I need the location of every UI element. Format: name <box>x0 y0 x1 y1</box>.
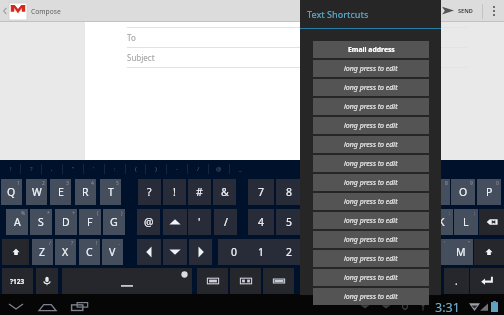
button[interactable]: R <box>75 179 96 205</box>
button[interactable]: Q <box>1 179 22 205</box>
button[interactable]: 1 <box>245 239 277 265</box>
button[interactable]: ! <box>1 160 21 178</box>
button[interactable]: 5 <box>276 209 302 235</box>
button[interactable]: long press to edit <box>313 98 429 115</box>
button[interactable]: long press to edit <box>313 174 429 191</box>
staticText: Z <box>39 245 46 259</box>
button[interactable]: Down <box>163 239 187 265</box>
button[interactable]: 0 <box>218 239 250 265</box>
button[interactable]: Y <box>375 179 399 205</box>
button[interactable]: 8 <box>276 179 302 205</box>
button[interactable]: Right <box>189 239 212 265</box>
button[interactable]: long press to edit <box>313 288 429 305</box>
button[interactable]: G <box>103 209 125 235</box>
button[interactable]: O <box>451 179 475 205</box>
button[interactable]: long press to edit <box>313 136 429 153</box>
button[interactable]: Keyboard layout <box>197 268 228 294</box>
button[interactable]: Voice input <box>36 268 58 294</box>
staticText: ) <box>155 165 157 173</box>
button[interactable]: Split keyboard <box>230 268 261 294</box>
button[interactable]: / <box>214 209 237 235</box>
button[interactable]: @ <box>137 209 160 235</box>
button[interactable]: & <box>213 179 236 205</box>
button[interactable]: 7 <box>248 179 274 205</box>
button[interactable]: long press to edit <box>313 60 429 77</box>
button[interactable]: long press to edit <box>313 79 429 96</box>
staticText: M <box>456 245 466 259</box>
button[interactable]: SEND <box>434 0 482 22</box>
button[interactable]: Shift <box>2 239 29 265</box>
button[interactable]: # <box>188 179 211 205</box>
button[interactable]: ? <box>21 160 41 178</box>
button[interactable]: Home <box>35 298 59 315</box>
button[interactable]: B <box>399 239 424 265</box>
staticText: SEND <box>458 7 473 15</box>
button[interactable]: Hide keyboard <box>4 298 28 315</box>
button[interactable]: ! <box>163 179 186 205</box>
button[interactable]: " <box>63 160 83 178</box>
button[interactable]: ' <box>188 209 211 235</box>
button[interactable]: ?123 <box>2 268 33 294</box>
button[interactable]: A <box>6 209 28 235</box>
button[interactable]: long press to edit <box>313 231 429 248</box>
button[interactable]: Navigate up <box>0 0 65 22</box>
button[interactable]: V <box>102 239 123 265</box>
staticText: & <box>221 185 229 199</box>
button[interactable]: Enter <box>470 268 504 294</box>
button[interactable]: W <box>26 179 47 205</box>
button[interactable]: X <box>55 239 76 265</box>
button[interactable]: D <box>55 209 77 235</box>
button[interactable]: Z <box>32 239 53 265</box>
button[interactable]: 9 <box>304 179 330 205</box>
button[interactable]: Space <box>62 268 192 294</box>
button[interactable]: H <box>379 209 403 235</box>
button[interactable]: long press to edit <box>313 269 429 286</box>
button[interactable]: M <box>448 239 473 265</box>
staticText: X <box>62 245 69 259</box>
staticText: 8 <box>445 180 448 187</box>
button[interactable]: @ <box>209 160 229 178</box>
button[interactable]: Shift <box>474 239 504 265</box>
button[interactable]: Up <box>163 209 187 235</box>
button[interactable]: long press to edit <box>313 212 429 229</box>
button[interactable]: L <box>454 209 478 235</box>
button[interactable]: S <box>30 209 52 235</box>
button[interactable]: Subject <box>127 48 467 67</box>
button[interactable]: T <box>100 179 121 205</box>
button[interactable]: More options <box>483 0 504 22</box>
button[interactable]: long press to edit <box>313 250 429 267</box>
button[interactable]: Floating keyboard <box>263 268 294 294</box>
button[interactable]: ( <box>126 160 146 178</box>
button[interactable]: J <box>404 209 428 235</box>
staticText: S <box>38 215 44 229</box>
button[interactable]: Backspace <box>479 209 504 235</box>
button[interactable]: . <box>444 268 469 294</box>
button[interactable]: Left <box>137 239 161 265</box>
button[interactable]: long press to edit <box>313 155 429 172</box>
button[interactable]: F <box>79 209 101 235</box>
button[interactable]: 2 <box>273 239 305 265</box>
button[interactable]: E <box>50 179 71 205</box>
button[interactable]: P <box>477 179 501 205</box>
button[interactable]: Email address <box>313 41 429 58</box>
button[interactable]: 6 <box>304 209 330 235</box>
staticText: long press to edit <box>344 254 398 264</box>
button[interactable]: ) <box>146 160 166 178</box>
button[interactable]: I <box>426 179 450 205</box>
button[interactable]: To <box>127 28 467 47</box>
button[interactable]: long press to edit <box>313 193 429 210</box>
button[interactable]: 4 <box>248 209 274 235</box>
button[interactable]: Recent apps <box>67 298 91 315</box>
button[interactable]: K <box>429 209 453 235</box>
button[interactable]: U <box>400 179 424 205</box>
button[interactable]: / <box>188 160 208 178</box>
button[interactable]: N <box>423 239 448 265</box>
button[interactable]: long press to edit <box>313 117 429 134</box>
button[interactable]: C <box>79 239 100 265</box>
button[interactable]: ? <box>138 179 161 205</box>
